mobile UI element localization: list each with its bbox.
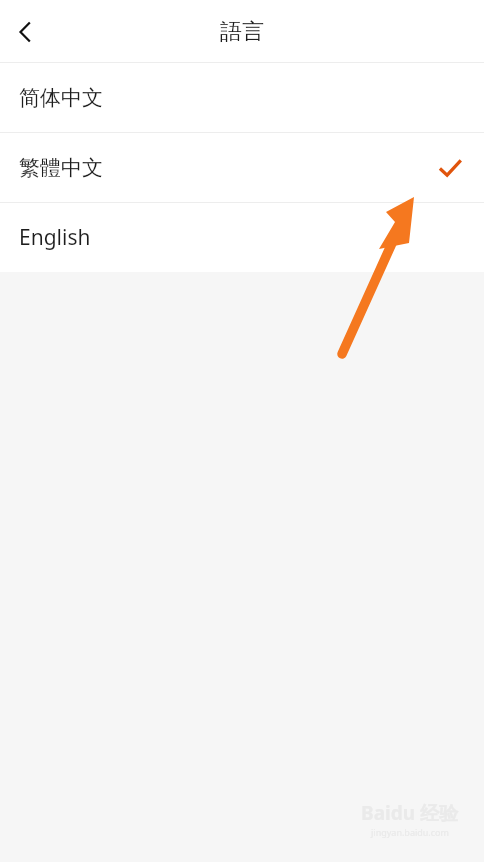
button[interactable]: 繁體中文: [0, 133, 484, 202]
button[interactable]: Back: [4, 10, 48, 54]
staticText: English: [19, 223, 91, 252]
button[interactable]: 简体中文: [0, 63, 484, 132]
staticText: Baidu 经验: [361, 800, 458, 826]
staticText: 简体中文: [19, 85, 103, 111]
staticText: 繁體中文: [19, 155, 103, 181]
staticText: 語言: [220, 18, 264, 46]
staticText: jingyan.baidu.com: [371, 826, 449, 838]
button[interactable]: English: [0, 203, 484, 272]
